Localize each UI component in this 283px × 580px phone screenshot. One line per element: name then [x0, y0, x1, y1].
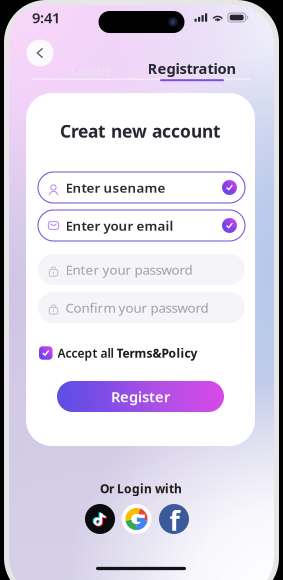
staticText: Register — [111, 387, 170, 406]
button[interactable]: Accept all Terms&Policy — [39, 344, 244, 362]
staticText: Enter your password — [65, 261, 192, 278]
staticText: f — [169, 503, 179, 538]
staticText: Enter your email — [65, 217, 173, 234]
button[interactable]: Enter your email — [38, 210, 245, 241]
button[interactable]: Login — [53, 57, 127, 83]
staticText: 9:41 — [32, 8, 60, 27]
staticText: Creat new account — [60, 119, 221, 142]
staticText: Accept all Terms&Policy — [57, 345, 197, 361]
button[interactable]: Register — [57, 381, 224, 412]
staticText: Confirm your password — [65, 299, 208, 316]
staticText: Or Login with — [100, 480, 182, 496]
button[interactable]: Registration — [142, 57, 242, 81]
button[interactable]: Or Login with — [100, 480, 182, 496]
button[interactable]: Enter your password — [38, 254, 245, 285]
button[interactable]: Back — [24, 37, 55, 68]
button[interactable]: Confirm your password — [38, 292, 245, 323]
button[interactable]: Enter usename — [38, 172, 245, 203]
button[interactable]: Sign in with Facebook — [159, 504, 189, 534]
staticText: Enter usename — [65, 179, 165, 196]
staticText: Registration — [147, 58, 236, 78]
button[interactable]: Sign in with TikTok — [85, 504, 115, 534]
staticText: Login — [70, 60, 109, 80]
button[interactable]: Sign in with Google — [121, 504, 151, 534]
